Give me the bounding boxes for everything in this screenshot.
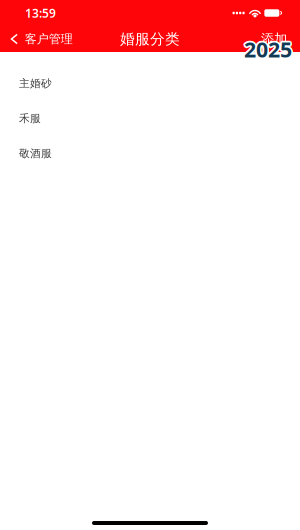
staticText: 禾服 [19,112,41,125]
staticText: 2025 [245,34,293,62]
staticText: 2025 [246,35,294,63]
button[interactable]: 添加 [248,28,300,50]
staticText: 主婚砂 [19,77,52,90]
staticText: 2025 [242,35,290,63]
staticText: 2025 [244,33,292,62]
button[interactable]: 主婚砂 [0,66,300,101]
button[interactable]: 禾服 [0,101,300,136]
button[interactable]: 敬酒服 [0,136,300,171]
staticText: 2025 [243,36,291,64]
staticText: 2025 [244,37,292,65]
staticText: 2025 [245,36,293,64]
staticText: 2025 [243,34,291,62]
staticText: 2025 [244,35,292,63]
staticText: 客户管理 [25,32,73,46]
staticText: 婚服分类 [120,30,180,48]
staticText: 13:59 [25,5,56,21]
button[interactable]: 返回 客户管理 [0,28,81,50]
staticText: 敬酒服 [19,147,52,160]
staticText: 添加 [261,31,287,47]
